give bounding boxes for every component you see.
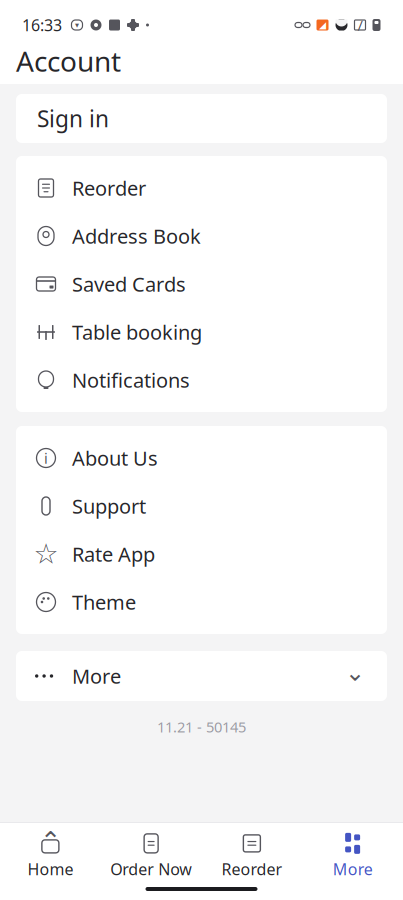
staticText: More bbox=[72, 663, 121, 689]
staticText: Order Now bbox=[110, 858, 192, 880]
staticText: Theme bbox=[72, 589, 136, 615]
staticText: ▾ bbox=[75, 20, 79, 30]
staticText: Sign in bbox=[37, 103, 109, 133]
button[interactable]: i bbox=[16, 434, 387, 482]
button[interactable]: Theme bbox=[16, 578, 387, 626]
staticText: About Us bbox=[72, 445, 158, 471]
staticText: Rate App bbox=[72, 541, 155, 567]
button[interactable]: Table booking bbox=[16, 308, 387, 356]
staticText: Support bbox=[72, 493, 146, 519]
button[interactable]: Reorder bbox=[16, 164, 387, 212]
button[interactable]: More bbox=[16, 651, 387, 701]
staticText: Table booking bbox=[72, 319, 202, 345]
button[interactable]: Notifications bbox=[16, 356, 387, 404]
staticText: Reorder bbox=[72, 175, 146, 201]
staticText: / bbox=[357, 15, 362, 35]
button[interactable]: More bbox=[302, 829, 403, 883]
staticText: Home bbox=[27, 858, 73, 880]
staticText: ◢ bbox=[319, 20, 326, 30]
button[interactable]: Saved Cards bbox=[16, 260, 387, 308]
button[interactable]: Address Book bbox=[16, 212, 387, 260]
staticText: ☆ bbox=[33, 538, 58, 570]
staticText: 16:33 bbox=[22, 14, 62, 36]
staticText: Account bbox=[16, 42, 121, 80]
button[interactable]: Support bbox=[16, 482, 387, 530]
staticText: ⌃ bbox=[40, 826, 61, 855]
button[interactable]: Sign in bbox=[16, 94, 387, 143]
staticText: i bbox=[44, 448, 48, 468]
staticText: Reorder bbox=[221, 858, 282, 880]
button[interactable]: Reorder bbox=[201, 829, 302, 883]
staticText: ⌄ bbox=[345, 659, 365, 686]
button[interactable]: ⌃ bbox=[0, 829, 101, 883]
staticText: Address Book bbox=[72, 223, 201, 249]
button[interactable]: Order Now bbox=[101, 829, 202, 883]
staticText: Saved Cards bbox=[72, 271, 186, 297]
staticText: Notifications bbox=[72, 367, 190, 393]
button[interactable]: ☆ bbox=[16, 530, 387, 578]
staticText: More bbox=[333, 858, 373, 880]
staticText: 11.21 - 50145 bbox=[157, 717, 246, 736]
